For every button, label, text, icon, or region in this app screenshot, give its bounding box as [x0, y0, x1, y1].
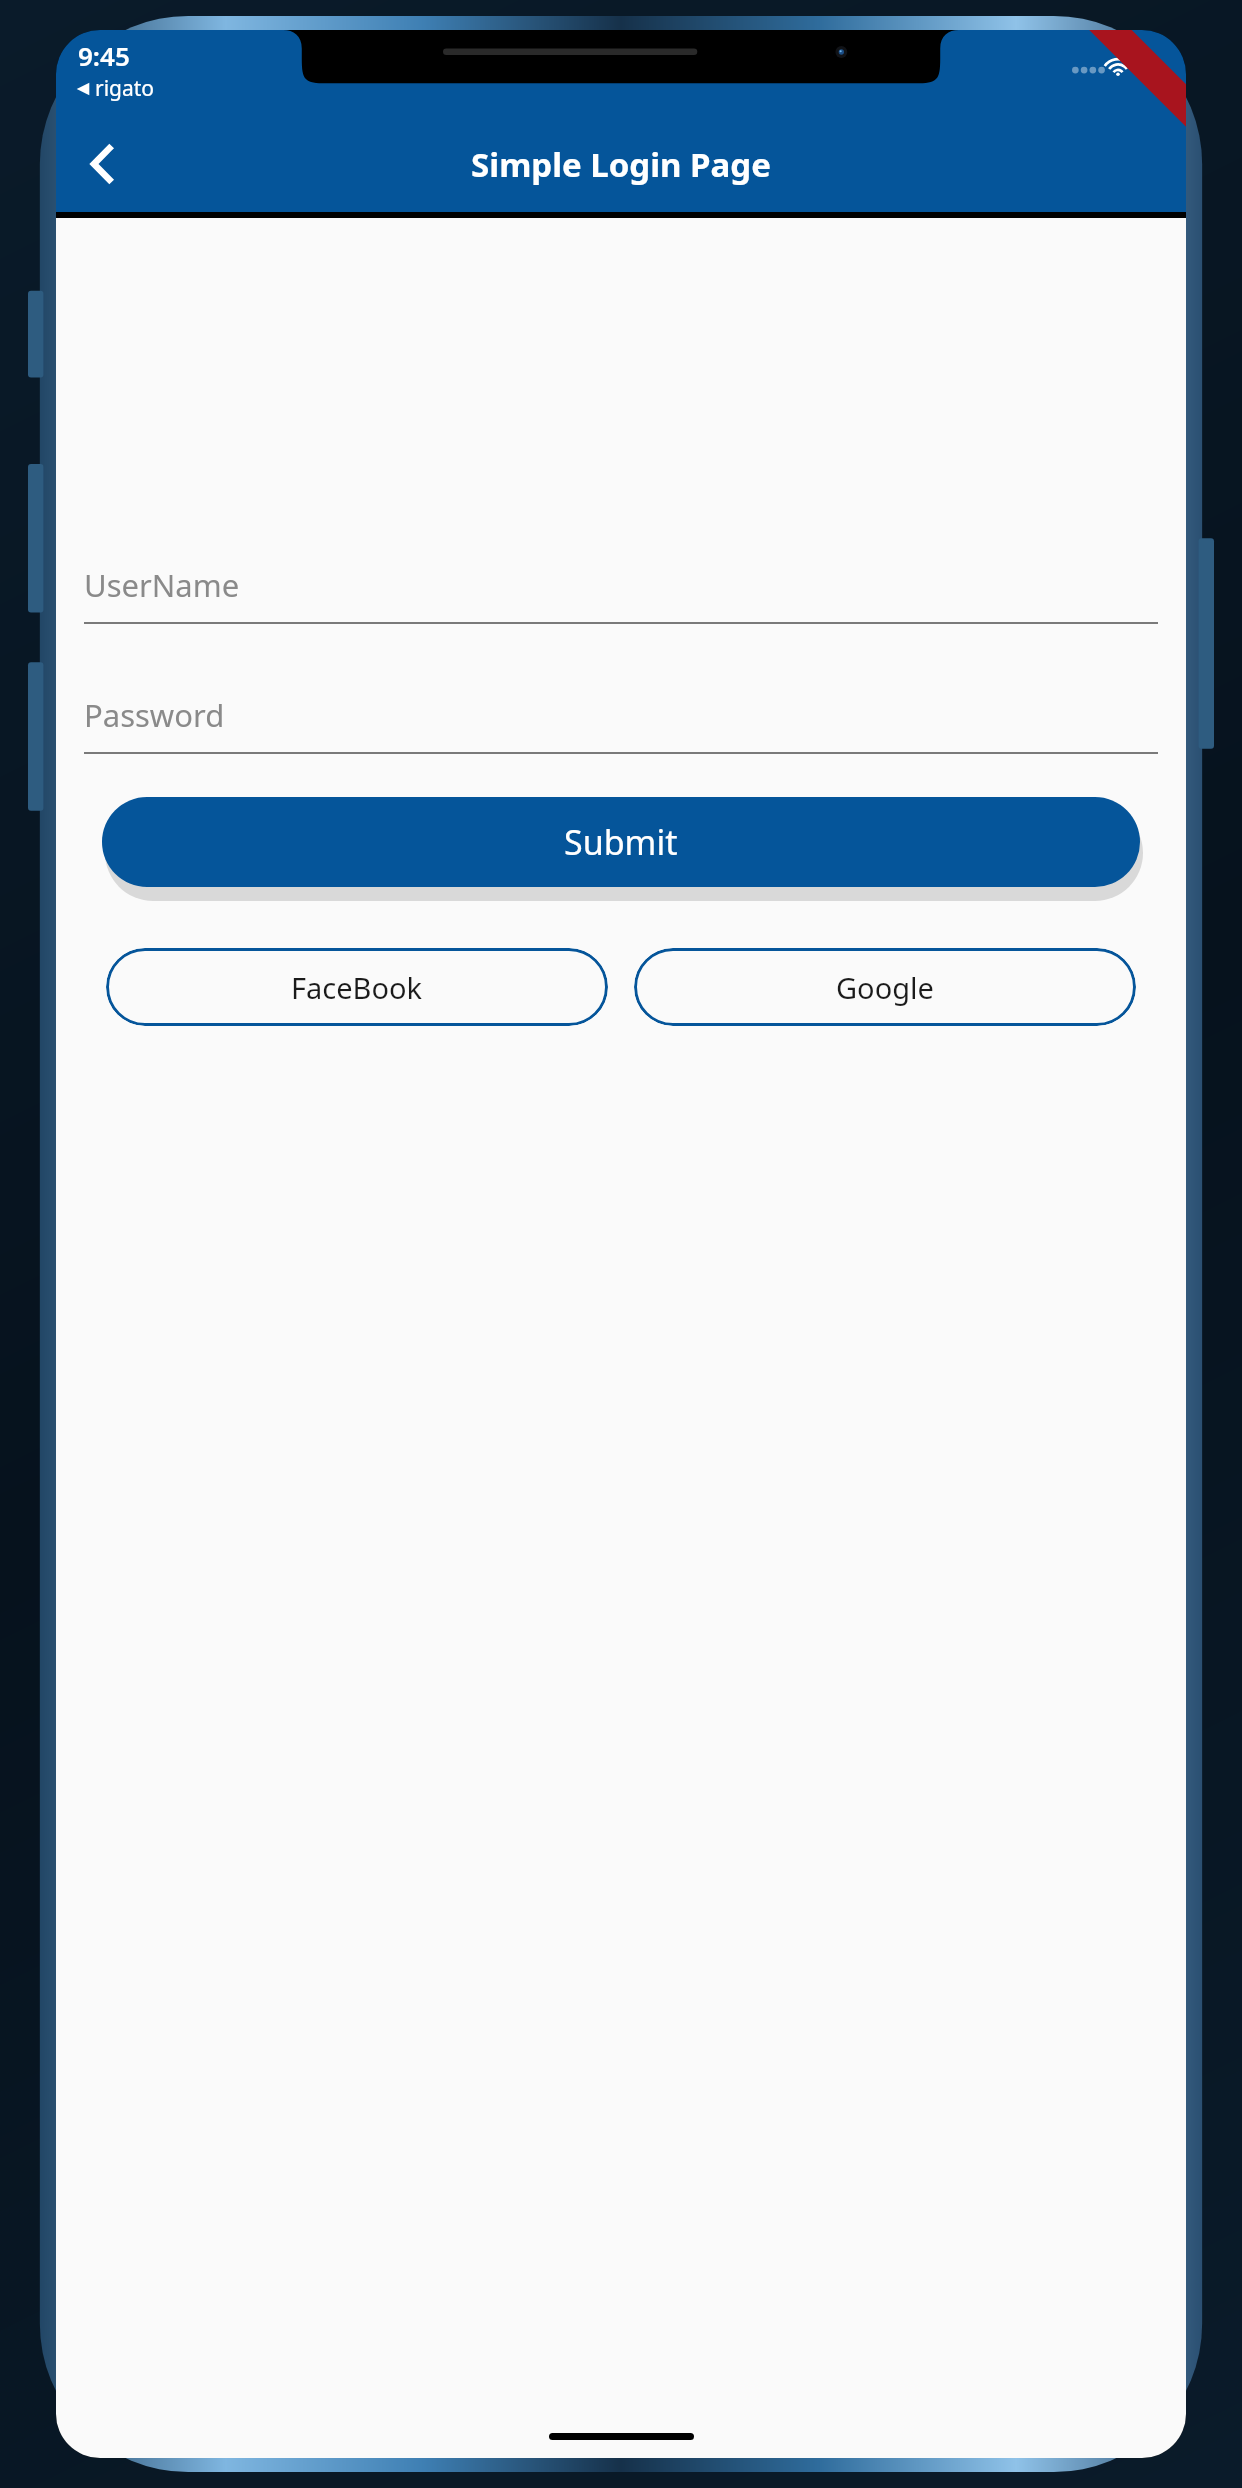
button[interactable]: Back	[70, 133, 132, 195]
button[interactable]: FaceBook	[106, 948, 608, 1026]
staticText: FaceBook	[291, 968, 423, 1007]
staticText: Simple Login Page	[471, 142, 771, 187]
staticText: 9:45	[78, 38, 130, 73]
staticText: Submit	[564, 819, 678, 865]
button[interactable]: UserName	[84, 548, 1158, 624]
button[interactable]: Password	[84, 678, 1158, 754]
staticText: Password	[84, 694, 225, 736]
button[interactable]: Submit	[102, 797, 1140, 887]
staticText: UserName	[84, 564, 240, 606]
button[interactable]: Google	[634, 948, 1136, 1026]
staticText: rigato	[95, 74, 155, 103]
staticText: Google	[836, 968, 934, 1007]
button[interactable]: rigato	[76, 74, 155, 103]
